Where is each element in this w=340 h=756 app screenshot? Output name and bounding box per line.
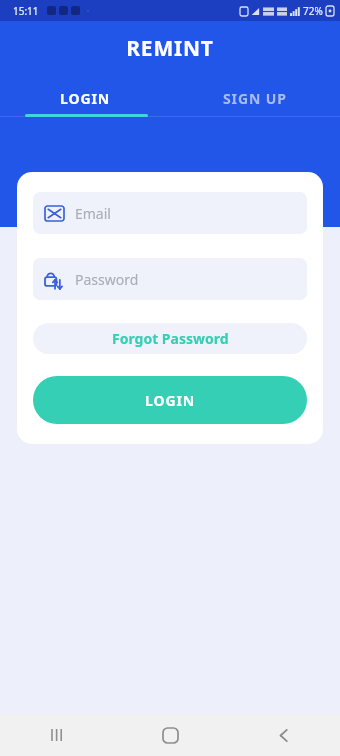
button[interactable]: Home xyxy=(114,714,227,756)
button[interactable]: Email xyxy=(33,192,307,234)
staticText: REMINT xyxy=(0,34,340,63)
staticText: Forgot Password xyxy=(112,329,229,348)
button[interactable]: Back xyxy=(227,714,340,756)
button[interactable]: Recents xyxy=(0,714,114,756)
staticText: LOGIN xyxy=(145,391,196,410)
staticText: 72% xyxy=(303,4,323,18)
other: Email xyxy=(45,206,64,221)
staticText: Email xyxy=(75,204,111,223)
button[interactable]: SIGN UP xyxy=(170,79,340,117)
staticText: Password xyxy=(75,270,139,289)
button[interactable]: LOGIN xyxy=(33,376,307,424)
staticText: 15:11 xyxy=(13,4,39,18)
button[interactable]: Forgot Password xyxy=(33,323,307,354)
staticText: LOGIN xyxy=(60,89,111,108)
other: Password xyxy=(45,270,64,289)
button[interactable]: LOGIN xyxy=(0,79,170,117)
button[interactable]: Password xyxy=(33,258,307,300)
staticText: SIGN UP xyxy=(223,89,287,108)
